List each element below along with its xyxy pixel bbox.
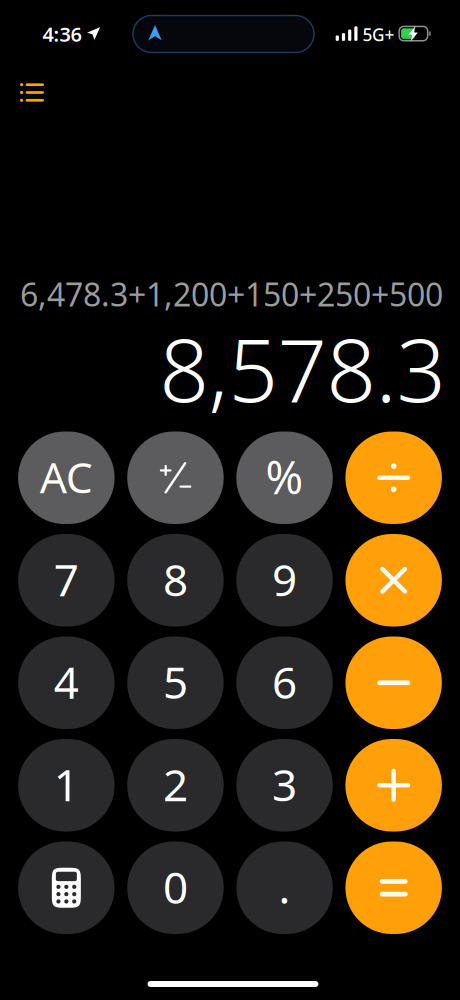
button[interactable]: AC — [18, 431, 115, 524]
staticText: 7 — [54, 550, 79, 608]
button[interactable]: 9 — [236, 534, 333, 626]
staticText: 8,578.3 — [159, 311, 445, 426]
staticText: % — [265, 447, 303, 507]
button[interactable]: 0 — [127, 841, 224, 934]
button[interactable]: Calculator mode — [18, 841, 115, 934]
button[interactable]: 8 — [127, 534, 224, 626]
button[interactable]: Equals — [345, 841, 442, 934]
staticText: 3 — [272, 755, 297, 813]
staticText: 1 — [54, 755, 79, 813]
button[interactable]: 6 — [236, 636, 333, 729]
staticText: 6,478.3+1,200+150+250+500 — [20, 273, 443, 315]
button[interactable]: 1 — [18, 739, 115, 831]
button[interactable]: Subtract — [345, 636, 442, 729]
button[interactable]: Divide — [345, 431, 442, 524]
button[interactable]: 4 — [18, 636, 115, 729]
staticText: 5G+ — [363, 23, 394, 46]
button[interactable]: 3 — [236, 739, 333, 831]
button[interactable]: Plus minus — [127, 431, 224, 524]
button[interactable]: History — [8, 68, 56, 113]
staticText: AC — [40, 448, 93, 505]
staticText: 6 — [272, 652, 297, 711]
staticText: 5 — [163, 652, 188, 711]
staticText: 0 — [163, 857, 188, 916]
staticText: 2 — [163, 755, 188, 813]
staticText: . — [278, 857, 290, 916]
staticText: 4 — [54, 652, 79, 711]
button[interactable]: 5 — [127, 636, 224, 729]
staticText: 8 — [163, 550, 188, 608]
button[interactable]: . — [236, 841, 333, 934]
staticText: 4:36 — [42, 21, 81, 47]
staticText: 9 — [272, 550, 297, 608]
button[interactable]: Multiply — [345, 534, 442, 626]
button[interactable]: 2 — [127, 739, 224, 831]
button[interactable]: % — [236, 431, 333, 524]
button[interactable]: 7 — [18, 534, 115, 626]
button[interactable]: Add — [345, 739, 442, 831]
